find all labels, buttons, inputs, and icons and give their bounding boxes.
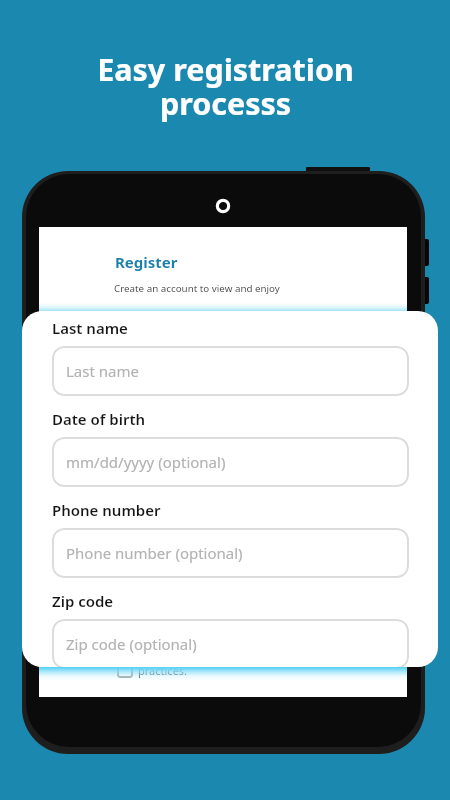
staticText: Zip code (optional) bbox=[66, 634, 197, 654]
staticText: Easy registration processs bbox=[97, 48, 354, 124]
button[interactable]: Zip code (optional) bbox=[52, 619, 409, 667]
staticText: practices. bbox=[138, 663, 188, 678]
staticText: Last name bbox=[66, 361, 139, 381]
staticText: Zip code bbox=[52, 591, 114, 611]
button[interactable]: Last name bbox=[52, 346, 409, 396]
button[interactable]: mm/dd/yyyy (optional) bbox=[52, 437, 409, 487]
staticText: Register bbox=[115, 252, 178, 272]
staticText: Last name bbox=[52, 318, 128, 338]
button[interactable]: Phone number (optional) bbox=[52, 528, 409, 578]
staticText: mm/dd/yyyy (optional) bbox=[66, 452, 226, 472]
button[interactable]: practices. bbox=[117, 662, 188, 678]
staticText: Phone number bbox=[52, 500, 161, 520]
staticText: Date of birth bbox=[52, 409, 146, 429]
staticText: Phone number (optional) bbox=[66, 543, 243, 563]
staticText: Create an account to view and enjoy bbox=[114, 282, 280, 295]
